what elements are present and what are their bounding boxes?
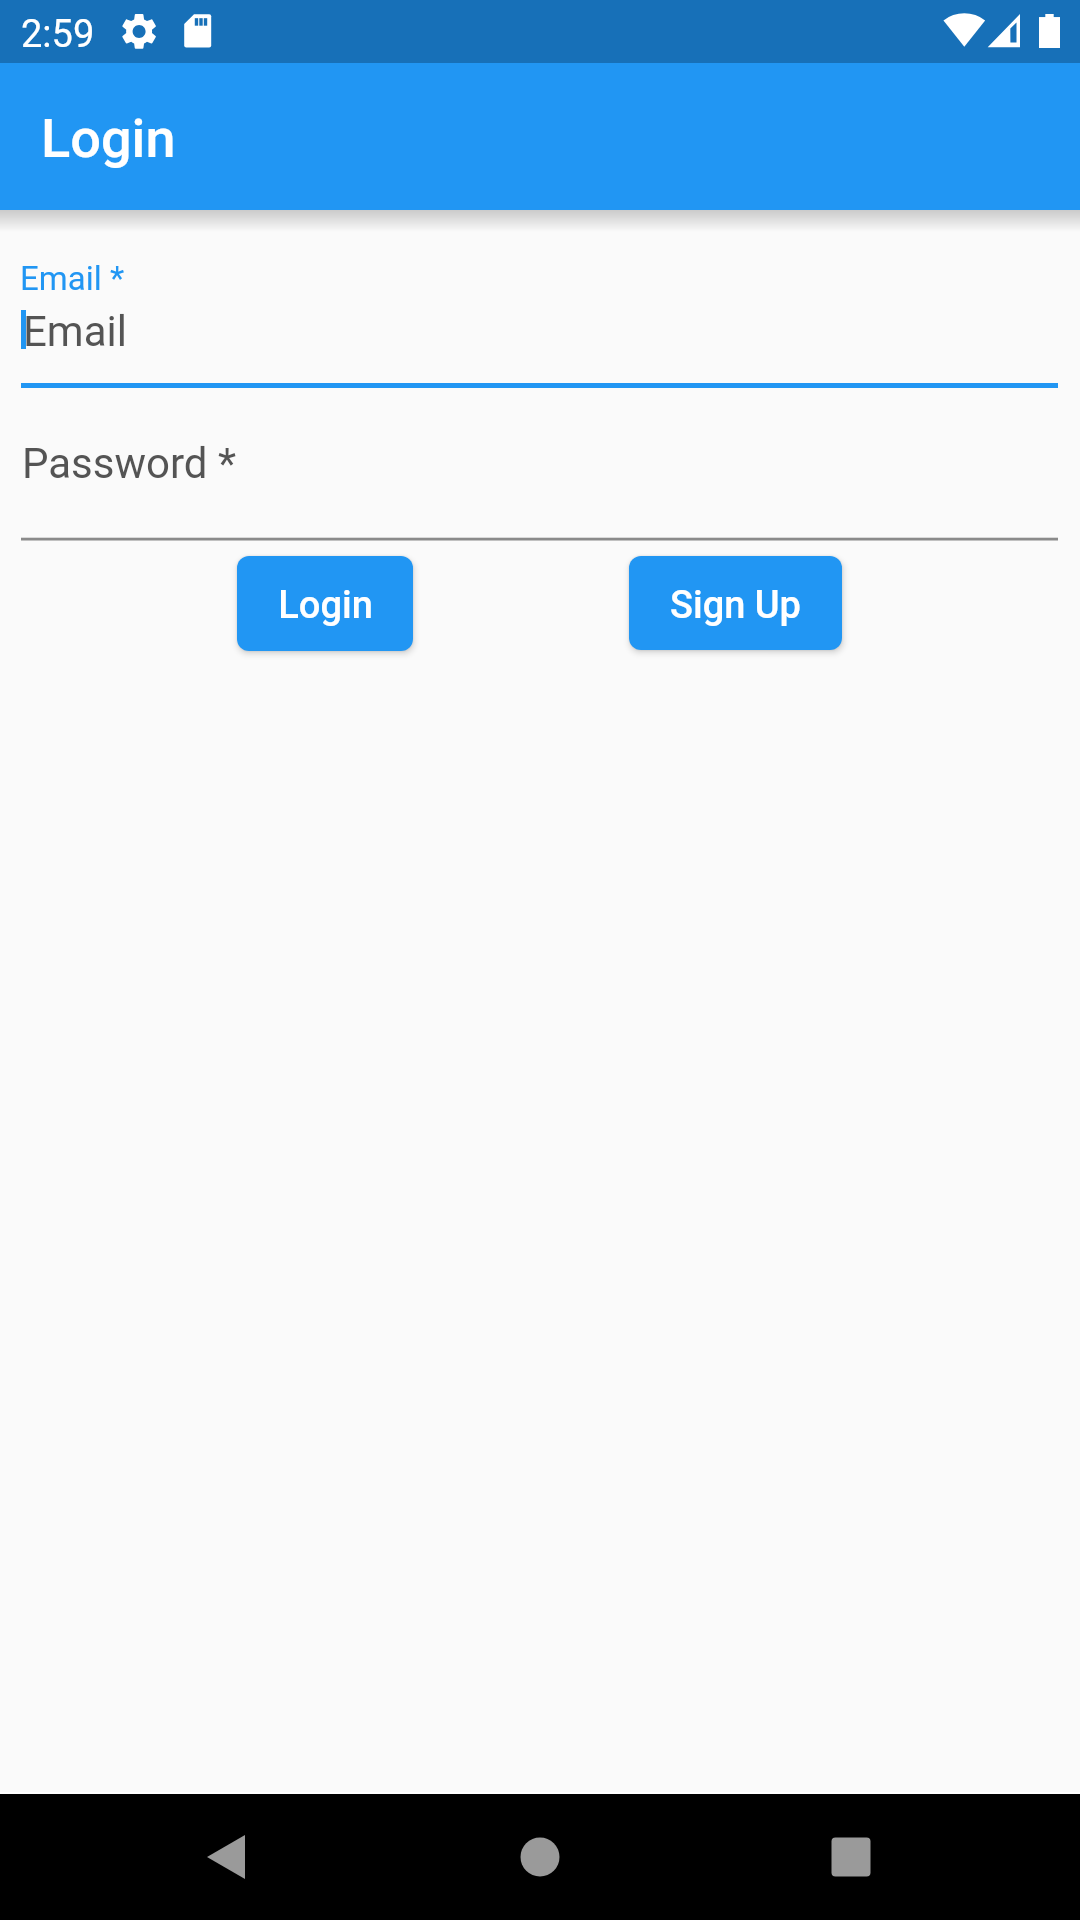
- staticText: 2:59: [21, 12, 95, 57]
- staticText: Sign Up: [670, 583, 801, 628]
- button[interactable]: Password *: [0, 400, 1080, 545]
- staticText: Login: [41, 107, 176, 170]
- button[interactable]: Email *: [0, 232, 1080, 392]
- button[interactable]: Home: [494, 1794, 586, 1920]
- staticText: Email *: [20, 259, 125, 298]
- button[interactable]: Sign Up: [629, 556, 842, 650]
- staticText: Email: [23, 307, 127, 356]
- button[interactable]: Login: [237, 556, 413, 651]
- button[interactable]: Recents: [805, 1794, 897, 1920]
- button[interactable]: Back: [180, 1794, 272, 1920]
- staticText: Login: [278, 583, 373, 628]
- staticText: Password *: [22, 439, 237, 488]
